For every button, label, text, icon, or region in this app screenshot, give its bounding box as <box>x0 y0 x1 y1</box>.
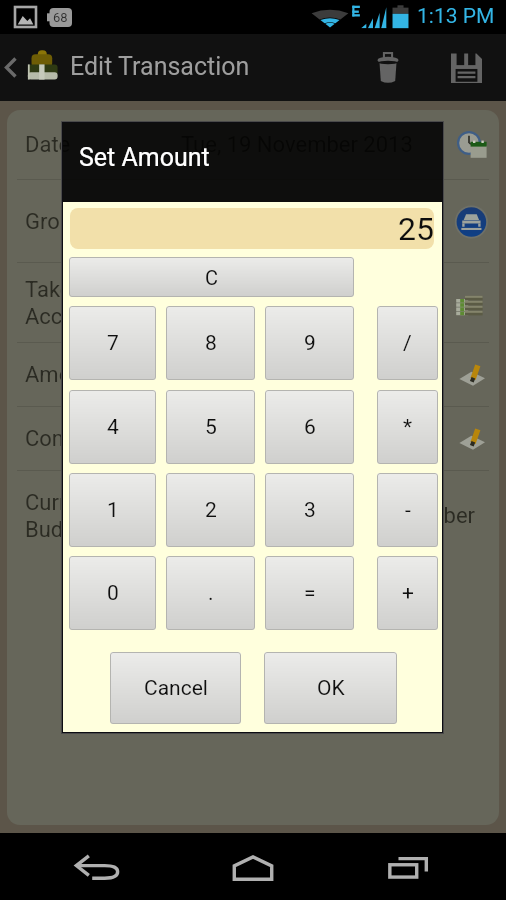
staticText: November <box>374 503 476 529</box>
button[interactable]: Cancel <box>110 652 241 724</box>
staticText: Take from Account <box>25 277 124 329</box>
button[interactable]: 9 <box>265 306 354 380</box>
staticText: C <box>205 266 219 289</box>
staticText: 1:13 PM <box>417 4 495 29</box>
button[interactable]: 8 <box>166 306 255 380</box>
button[interactable]: 0 <box>69 556 156 630</box>
staticText: 5 <box>205 415 217 440</box>
button[interactable]: Back <box>37 833 157 900</box>
button[interactable]: Edit Transaction <box>6 34 250 101</box>
button[interactable]: - <box>377 473 438 547</box>
staticText: Group <box>25 209 85 235</box>
button[interactable]: 2 <box>166 473 255 547</box>
staticText: Date <box>25 132 71 158</box>
button[interactable]: Date <box>7 110 499 180</box>
button[interactable]: 6 <box>265 390 354 464</box>
staticText: Set Amount <box>79 143 210 172</box>
staticText: 68 <box>53 10 68 25</box>
staticText: 6 <box>304 415 316 440</box>
button[interactable]: Take from Account <box>7 263 499 343</box>
button[interactable]: Save <box>427 34 506 101</box>
button[interactable]: Current Budget <box>7 471 499 561</box>
staticText: = <box>304 581 316 606</box>
staticText: 3 <box>304 498 316 523</box>
staticText: . <box>208 581 214 606</box>
staticText: Comment <box>25 426 122 452</box>
button[interactable]: 4 <box>69 390 156 464</box>
staticText: 0 <box>107 581 119 606</box>
button[interactable]: . <box>166 556 255 630</box>
button[interactable]: Delete <box>348 34 427 101</box>
button[interactable]: Home <box>193 833 313 900</box>
staticText: Cancel <box>144 676 208 701</box>
button[interactable]: Group <box>7 180 499 263</box>
staticText: - <box>405 498 411 523</box>
staticText: Edit Transaction <box>70 52 250 81</box>
staticText: 9 <box>304 331 316 356</box>
staticText: 1 <box>107 498 119 523</box>
staticText: Amount <box>25 362 103 388</box>
staticText: 7 <box>107 331 119 356</box>
button[interactable]: Amount <box>7 343 499 407</box>
button[interactable]: 1 <box>69 473 156 547</box>
staticText: + <box>402 581 414 606</box>
button[interactable]: = <box>265 556 354 630</box>
button[interactable]: * <box>377 390 438 464</box>
staticText: * <box>403 415 413 440</box>
staticText: 2 <box>205 498 217 523</box>
button[interactable]: C <box>69 257 354 297</box>
staticText: / <box>403 331 412 356</box>
staticText: OK <box>317 676 345 701</box>
staticText: 8 <box>205 331 217 356</box>
staticText: Tue, 19 November 2013 <box>181 132 413 158</box>
staticText: 4 <box>107 415 119 440</box>
button[interactable]: 25 <box>70 208 434 249</box>
button[interactable]: OK <box>264 652 397 724</box>
staticText: 25 <box>398 210 434 248</box>
button[interactable]: 5 <box>166 390 255 464</box>
button[interactable]: / <box>377 306 438 380</box>
button[interactable]: + <box>377 556 438 630</box>
button[interactable]: 7 <box>69 306 156 380</box>
staticText: Current Budget <box>25 490 98 542</box>
button[interactable]: Recents <box>350 833 470 900</box>
button[interactable]: Comment <box>7 407 499 471</box>
button[interactable]: 3 <box>265 473 354 547</box>
